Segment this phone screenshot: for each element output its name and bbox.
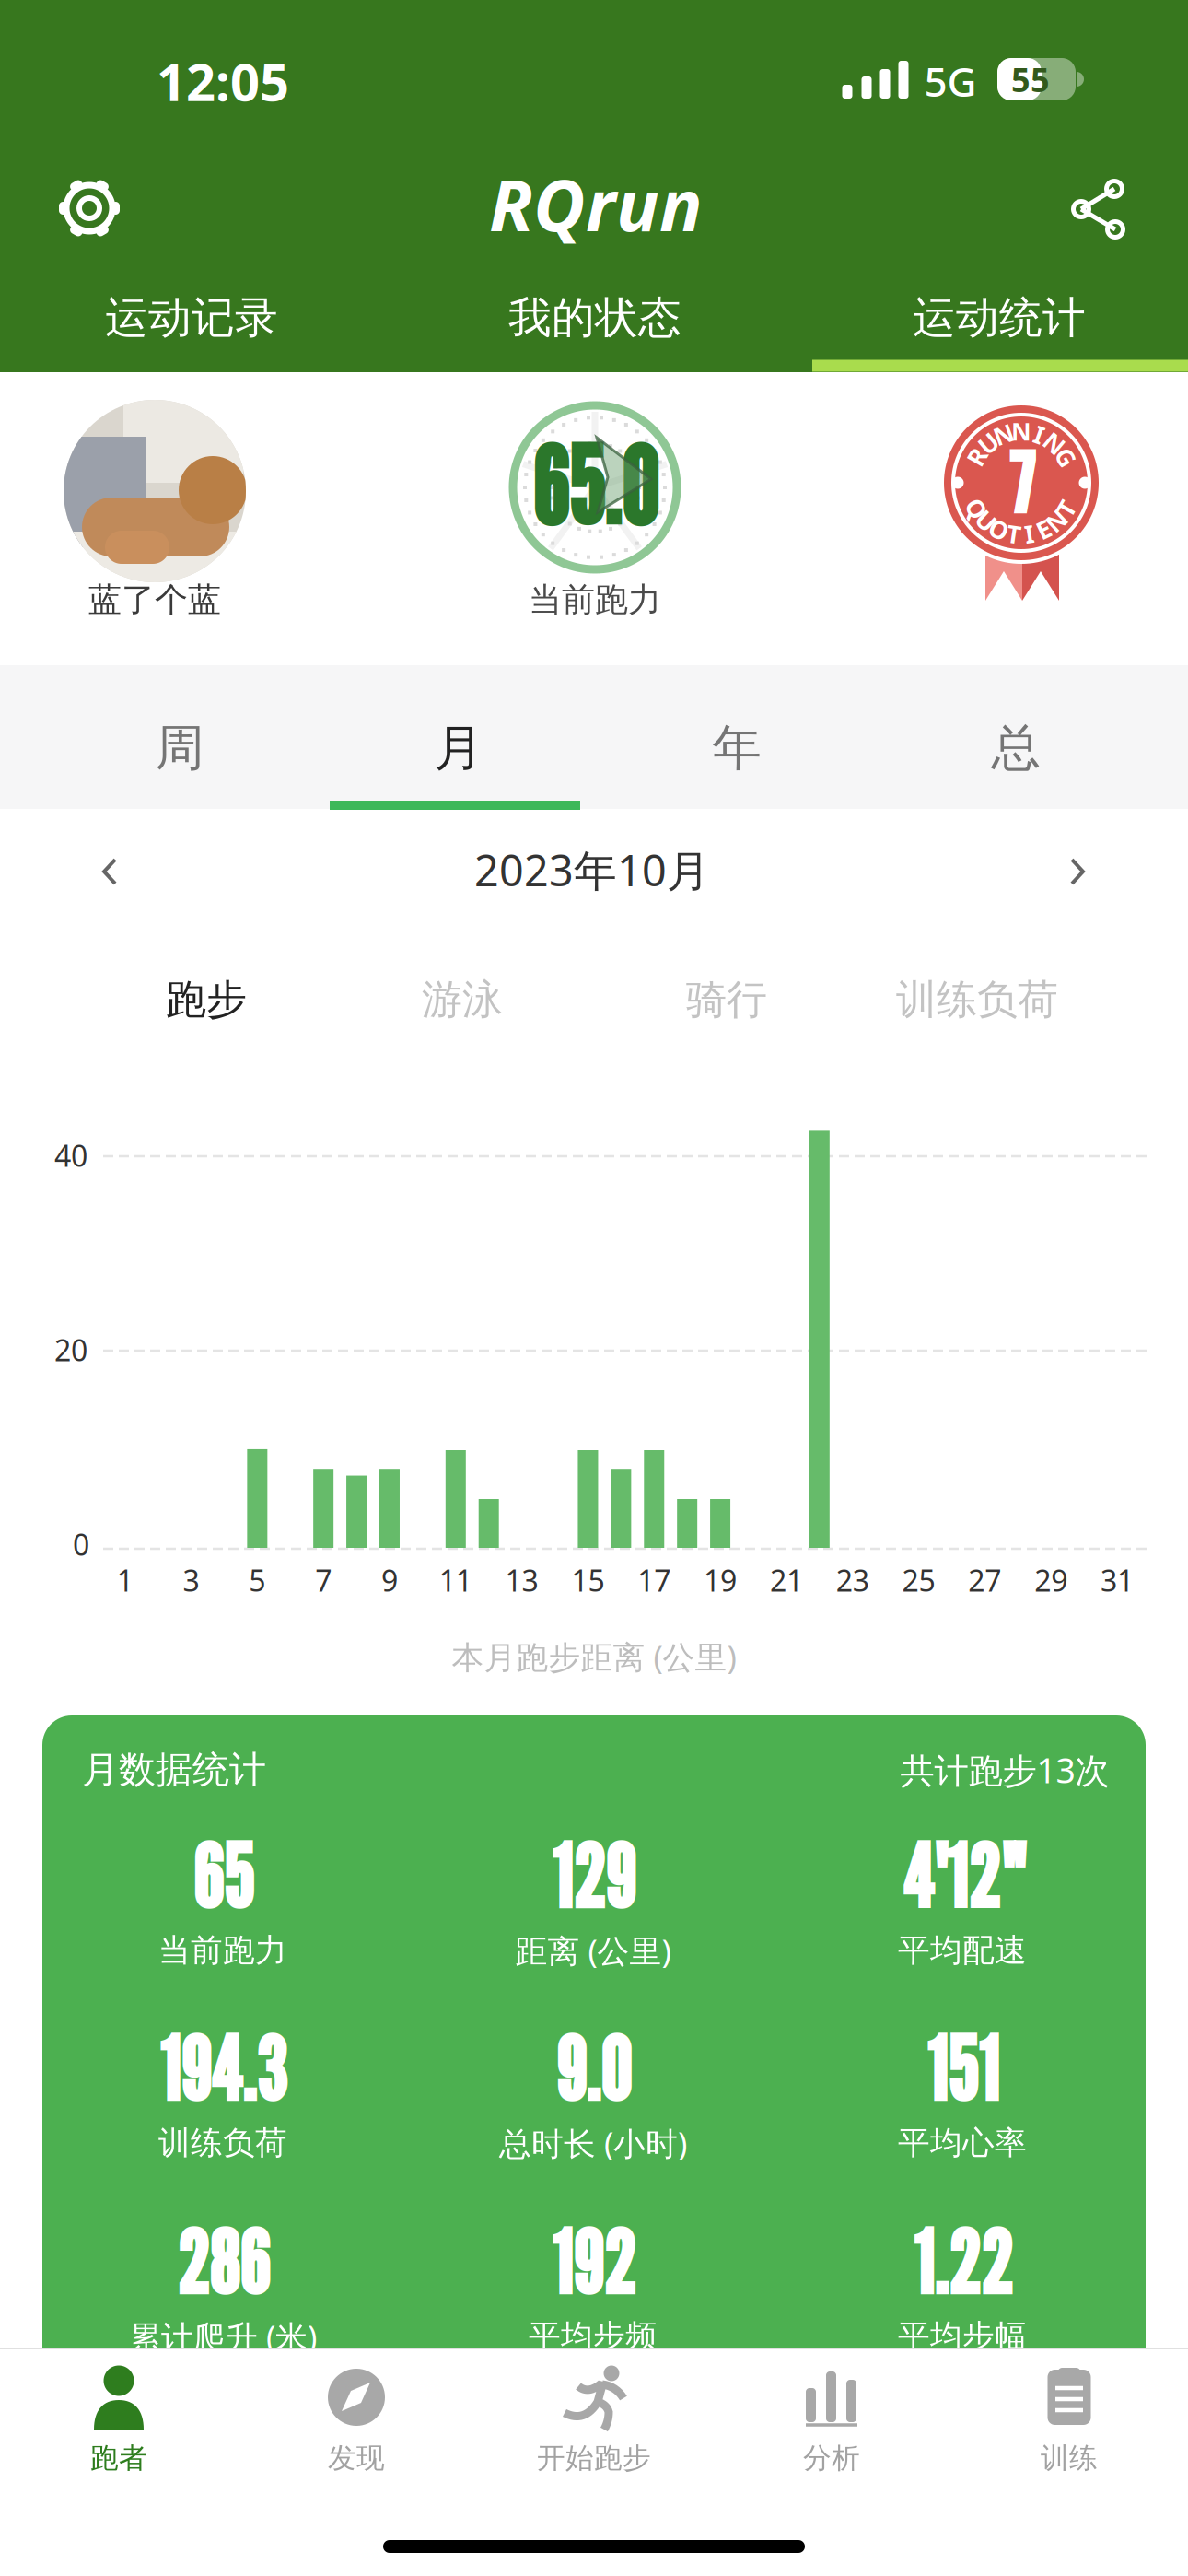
staticText: 训练负荷 bbox=[896, 974, 1058, 1025]
button[interactable]: 运动记录 bbox=[0, 276, 385, 359]
staticText: N bbox=[1046, 504, 1067, 537]
staticText: 训练负荷 bbox=[158, 2123, 287, 2163]
staticText: 平均心率 bbox=[898, 2123, 1027, 2163]
staticText: 12:05 bbox=[157, 46, 289, 116]
staticText: 19 bbox=[704, 1560, 737, 1600]
staticText: 分析 bbox=[803, 2440, 860, 2476]
staticText: I bbox=[1034, 418, 1044, 451]
staticText: 5 bbox=[249, 1560, 266, 1600]
staticText: 我的状态 bbox=[508, 291, 681, 345]
staticText: 7 bbox=[1008, 433, 1034, 533]
staticText: 13 bbox=[505, 1560, 538, 1600]
staticText: 9 bbox=[381, 1560, 398, 1600]
staticText: 17 bbox=[638, 1560, 671, 1600]
staticText: G bbox=[1057, 440, 1075, 474]
button[interactable]: 运动统计 bbox=[806, 276, 1188, 359]
staticText: 151 bbox=[926, 2015, 999, 2121]
staticText: U bbox=[979, 426, 997, 460]
staticText: T bbox=[1059, 492, 1073, 525]
button[interactable] bbox=[1050, 844, 1105, 899]
button[interactable]: 月 bbox=[325, 679, 592, 817]
staticText: T bbox=[1007, 517, 1021, 550]
staticText: I bbox=[1024, 517, 1034, 550]
staticText: 286 bbox=[176, 2209, 269, 2315]
staticText: 1.22 bbox=[913, 2209, 1012, 2315]
button[interactable] bbox=[82, 844, 137, 899]
button[interactable]: 总 bbox=[882, 679, 1149, 817]
staticText: 65.0 bbox=[532, 422, 658, 549]
staticText: 11 bbox=[439, 1560, 472, 1600]
staticText: N bbox=[1044, 426, 1065, 460]
button[interactable]: 我的状态 bbox=[402, 276, 788, 359]
staticText: U bbox=[977, 504, 995, 537]
staticText: 7 bbox=[315, 1560, 332, 1600]
staticText: RQrun bbox=[489, 155, 703, 252]
staticText: 骑行 bbox=[686, 974, 767, 1025]
staticText: 40 bbox=[54, 1135, 87, 1175]
button[interactable]: 年 bbox=[603, 679, 870, 817]
staticText: 累计爬升 (米) bbox=[129, 2315, 317, 2358]
button[interactable]: 训练负荷 bbox=[857, 958, 1097, 1041]
staticText: 1 bbox=[117, 1560, 133, 1600]
staticText: 129 bbox=[551, 1823, 635, 1929]
staticText: 本月跑步距离 (公里) bbox=[452, 1635, 736, 1678]
staticText: 蓝了个蓝 bbox=[88, 579, 221, 621]
button[interactable]: 训练 bbox=[954, 2340, 1184, 2484]
staticText: 开始跑步 bbox=[537, 2440, 651, 2476]
staticText: 共计跑步13次 bbox=[900, 1746, 1109, 1793]
staticText: 3 bbox=[183, 1560, 199, 1600]
button[interactable]: 游泳 bbox=[343, 958, 582, 1041]
button[interactable]: 开始跑步 bbox=[479, 2340, 709, 2484]
staticText: 距离 (公里) bbox=[515, 1929, 671, 1972]
staticText: 25 bbox=[902, 1560, 935, 1600]
staticText: R bbox=[969, 440, 984, 474]
staticText: 2023年10月 bbox=[474, 840, 710, 899]
button[interactable]: 发现 bbox=[241, 2340, 472, 2484]
staticText: 31 bbox=[1101, 1560, 1134, 1600]
staticText: 跑步 bbox=[166, 974, 247, 1025]
staticText: 当前跑力 bbox=[529, 579, 661, 621]
button[interactable]: 分析 bbox=[716, 2340, 947, 2484]
staticText: 4'12" bbox=[902, 1823, 1023, 1929]
button[interactable] bbox=[48, 167, 131, 250]
staticText: 0 bbox=[73, 1524, 89, 1564]
staticText: 平均配速 bbox=[898, 1930, 1027, 1971]
staticText: 游泳 bbox=[422, 974, 503, 1025]
button[interactable]: 跑者 bbox=[4, 2340, 234, 2484]
button[interactable]: 骑行 bbox=[607, 958, 846, 1041]
button[interactable] bbox=[64, 400, 246, 582]
staticText: 65 bbox=[192, 1823, 253, 1929]
staticText: 平均步幅 bbox=[898, 2316, 1027, 2357]
staticText: 训练 bbox=[1041, 2440, 1098, 2476]
staticText: 跑者 bbox=[90, 2440, 147, 2476]
button[interactable]: 跑步 bbox=[87, 958, 326, 1041]
staticText: 月数据统计 bbox=[82, 1747, 266, 1793]
button[interactable] bbox=[1063, 172, 1136, 246]
staticText: 192 bbox=[551, 2209, 635, 2315]
staticText: 15 bbox=[571, 1560, 604, 1600]
staticText: 21 bbox=[770, 1560, 803, 1600]
staticText: 5G bbox=[924, 53, 977, 109]
staticText: 20 bbox=[54, 1330, 87, 1370]
staticText: N bbox=[1011, 414, 1031, 448]
staticText: 55 bbox=[1011, 57, 1050, 102]
staticText: E bbox=[1037, 513, 1051, 546]
staticText: 23 bbox=[836, 1560, 869, 1600]
staticText: 总 bbox=[991, 717, 1040, 779]
staticText: 9.0 bbox=[555, 2015, 631, 2121]
staticText: 发现 bbox=[328, 2440, 385, 2476]
staticText: O bbox=[989, 513, 1009, 546]
staticText: 周 bbox=[155, 717, 204, 779]
staticText: 当前跑力 bbox=[158, 1930, 287, 1971]
staticText: 平均步频 bbox=[529, 2316, 658, 2357]
staticText: Q bbox=[967, 492, 986, 525]
staticText: 运动记录 bbox=[105, 291, 278, 345]
staticText: 总时长 (小时) bbox=[499, 2121, 687, 2165]
staticText: 29 bbox=[1034, 1560, 1068, 1600]
staticText: 月 bbox=[434, 717, 483, 779]
staticText: 194.3 bbox=[159, 2015, 287, 2121]
button[interactable]: 周 bbox=[46, 679, 313, 817]
staticText: 运动统计 bbox=[913, 291, 1086, 345]
staticText: 27 bbox=[968, 1560, 1001, 1600]
staticText: N bbox=[993, 418, 1014, 451]
